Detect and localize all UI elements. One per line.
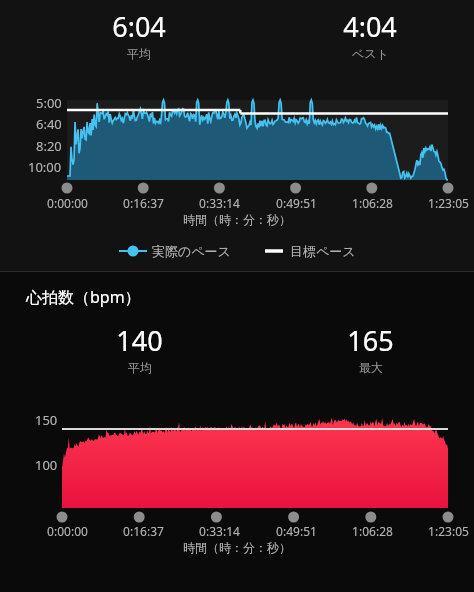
other: 目標ペース凡例 [263, 244, 285, 258]
button[interactable]: 実際のペース凡例 [119, 243, 231, 259]
staticText: 0:33:14 [199, 523, 240, 539]
staticText: 最大 [359, 360, 383, 375]
staticText: 10:00 [28, 158, 62, 176]
button[interactable]: 140 [69, 322, 209, 375]
staticText: 0:49:51 [276, 523, 317, 539]
staticText: 6:40 [36, 115, 62, 133]
other: 実際のペース凡例 [119, 244, 147, 258]
button[interactable]: 165 [300, 322, 440, 375]
staticText: 1:06:28 [352, 195, 393, 211]
staticText: 165 [347, 322, 394, 359]
staticText: 150 [35, 411, 58, 429]
staticText: 時間（時：分：秒） [183, 212, 291, 227]
staticText: 0:33:14 [199, 195, 240, 211]
staticText: 5:00 [36, 94, 62, 112]
staticText: 1:23:05 [428, 195, 469, 211]
staticText: 8:20 [36, 137, 62, 155]
staticText: 0:00:00 [47, 523, 88, 539]
staticText: 平均 [127, 46, 151, 61]
button[interactable]: 6:04 [69, 8, 209, 61]
staticText: 実際のペース [152, 243, 231, 259]
button[interactable]: 目標ペース凡例 [263, 243, 356, 259]
staticText: 0:16:37 [123, 195, 164, 211]
staticText: 1:23:05 [428, 523, 469, 539]
button[interactable]: 心拍数（bpm） [26, 286, 141, 308]
staticText: 0:16:37 [123, 523, 164, 539]
staticText: 0:00:00 [47, 195, 88, 211]
staticText: 4:04 [343, 8, 397, 45]
staticText: 100 [35, 456, 58, 474]
staticText: 6:04 [112, 8, 166, 45]
staticText: 0:49:51 [276, 195, 317, 211]
staticText: ベスト [352, 46, 389, 61]
staticText: 140 [116, 322, 163, 359]
staticText: 1:06:28 [352, 523, 393, 539]
staticText: 目標ペース [290, 243, 356, 259]
button[interactable]: 4:04 [300, 8, 440, 61]
staticText: 時間（時：分：秒） [183, 540, 291, 555]
staticText: 平均 [128, 360, 152, 375]
staticText: 心拍数（bpm） [26, 286, 141, 308]
